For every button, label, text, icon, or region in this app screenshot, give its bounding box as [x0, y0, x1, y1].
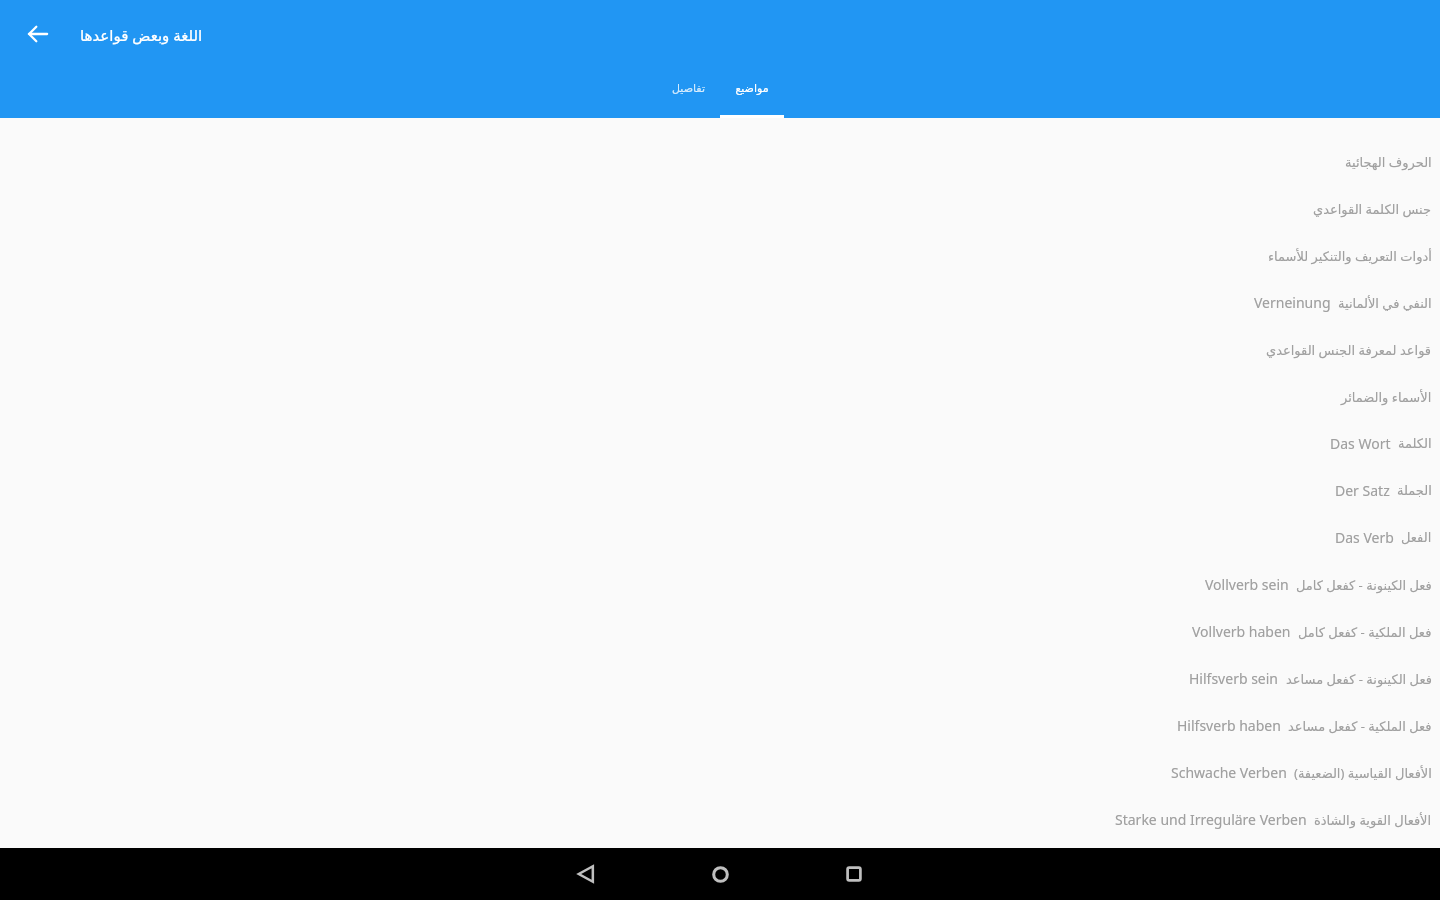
staticText: Hilfsverb haben: [1177, 716, 1281, 735]
button[interactable]: Back: [14, 10, 62, 58]
button[interactable]: Vollverb haben: [0, 608, 1440, 655]
staticText: الأسماء والضمائر: [1341, 388, 1432, 406]
staticText: الكلمة: [1398, 436, 1432, 451]
button[interactable]: Das Wort: [0, 420, 1440, 467]
staticText: Hilfsverb sein: [1189, 669, 1279, 688]
staticText: اللغة وبعض قواعدها: [80, 25, 203, 45]
button[interactable]: Der Satz: [0, 467, 1440, 514]
staticText: تفاصيل: [672, 82, 705, 95]
button[interactable]: Hilfsverb haben: [0, 702, 1440, 749]
staticText: النفي في الألمانية: [1338, 294, 1432, 312]
button[interactable]: تفاصيل: [656, 66, 720, 118]
button[interactable]: أدوات التعريف والتنكير للأسماء: [0, 232, 1440, 279]
button[interactable]: Recent apps: [830, 850, 878, 898]
staticText: الجملة: [1397, 483, 1432, 498]
staticText: فعل الكينونة - كفعل كامل: [1296, 576, 1432, 594]
button[interactable]: Home: [696, 850, 744, 898]
staticText: Vollverb haben: [1192, 622, 1291, 641]
button[interactable]: Hilfsverb sein: [0, 655, 1440, 702]
button[interactable]: Starke und Irreguläre Verben: [0, 796, 1440, 843]
staticText: Der Satz: [1335, 481, 1390, 500]
button[interactable]: الأسماء والضمائر: [0, 373, 1440, 420]
button[interactable]: Verneinung: [0, 279, 1440, 326]
staticText: الأفعال القياسية (الضعيفة): [1294, 764, 1432, 782]
button[interactable]: الحروف الهجائية: [0, 138, 1440, 185]
staticText: فعل الملكية - كفعل كامل: [1298, 623, 1432, 641]
staticText: فعل الملكية - كفعل مساعد: [1288, 717, 1432, 735]
button[interactable]: Schwache Verben: [0, 749, 1440, 796]
staticText: مواضيع: [735, 82, 769, 95]
staticText: الفعل: [1401, 530, 1432, 545]
staticText: الحروف الهجائية: [1345, 153, 1432, 171]
staticText: فعل الكينونة - كفعل مساعد: [1286, 670, 1432, 688]
button[interactable]: قواعد لمعرفة الجنس القواعدي: [0, 326, 1440, 373]
staticText: Das Verb: [1335, 528, 1394, 547]
staticText: Starke und Irreguläre Verben: [1115, 810, 1307, 829]
staticText: Verneinung: [1254, 293, 1331, 312]
button[interactable]: Back: [562, 850, 610, 898]
staticText: قواعد لمعرفة الجنس القواعدي: [1266, 341, 1432, 359]
staticText: جنس الكلمة القواعدي: [1313, 200, 1432, 218]
staticText: Das Wort: [1330, 434, 1391, 453]
button[interactable]: Das Verb: [0, 514, 1440, 561]
staticText: Vollverb sein: [1205, 575, 1289, 594]
button[interactable]: جنس الكلمة القواعدي: [0, 185, 1440, 232]
button[interactable]: مواضيع: [720, 66, 784, 118]
staticText: Schwache Verben: [1171, 763, 1287, 782]
staticText: الأفعال القوية والشاذة: [1314, 811, 1432, 829]
button[interactable]: Vollverb sein: [0, 561, 1440, 608]
staticText: أدوات التعريف والتنكير للأسماء: [1268, 247, 1432, 265]
